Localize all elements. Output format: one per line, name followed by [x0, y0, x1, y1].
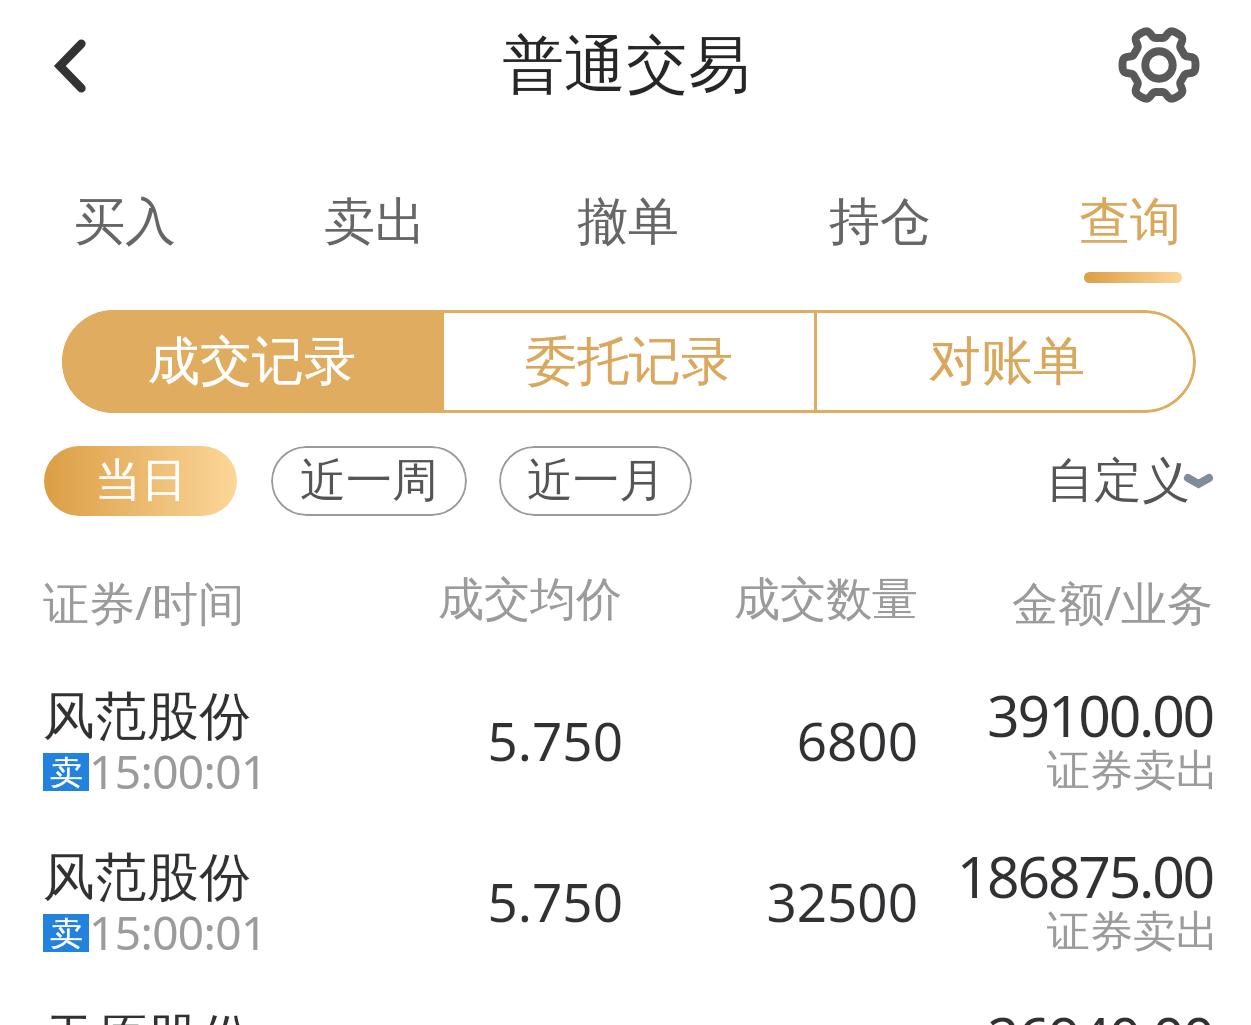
- staticText: 卖: [50, 913, 83, 951]
- staticText: 39100.00: [862, 676, 1213, 754]
- staticText: 近一月: [527, 452, 665, 510]
- staticText: 成交记录: [148, 329, 356, 395]
- button[interactable]: 成交记录: [62, 310, 441, 413]
- button[interactable]: 卖出: [250, 180, 500, 290]
- staticText: 成交数量: [652, 571, 918, 629]
- button[interactable]: 查询: [1005, 180, 1251, 290]
- staticText: 186875.00: [862, 837, 1213, 915]
- staticText: 32500: [653, 865, 918, 937]
- button[interactable]: 近一月: [499, 446, 692, 516]
- staticText: 26940.00: [862, 998, 1213, 1025]
- button[interactable]: 持仓: [755, 180, 1005, 290]
- staticText: 15:00:01: [89, 901, 267, 964]
- button[interactable]: 买入: [0, 180, 250, 290]
- button[interactable]: Settings: [1113, 19, 1205, 111]
- button[interactable]: 当日: [44, 446, 237, 516]
- button[interactable]: 风范股份: [0, 684, 1251, 845]
- staticText: 对账单: [929, 329, 1085, 395]
- staticText: 5.750: [253, 865, 623, 937]
- staticText: 证券卖出: [958, 905, 1219, 959]
- staticText: 自定义: [1046, 451, 1190, 511]
- staticText: 近一周: [300, 452, 438, 510]
- staticText: 买入: [74, 190, 176, 254]
- staticText: 卖出: [324, 190, 426, 254]
- button[interactable]: 近一周: [271, 446, 467, 516]
- button[interactable]: 自定义: [1046, 446, 1223, 516]
- staticText: 5.750: [253, 704, 623, 776]
- staticText: 撤单: [577, 190, 679, 254]
- staticText: 证券卖出: [958, 744, 1219, 798]
- staticText: 天原股份: [43, 1006, 251, 1025]
- staticText: 查询: [1079, 190, 1181, 254]
- staticText: 风范股份: [43, 684, 251, 750]
- staticText: 金额/业务: [952, 571, 1213, 634]
- button[interactable]: 委托记录: [444, 310, 814, 413]
- button[interactable]: 撤单: [503, 180, 753, 290]
- staticText: 风范股份: [43, 845, 251, 911]
- staticText: 卖: [50, 752, 83, 790]
- button[interactable]: 天原股份: [0, 1006, 1251, 1025]
- staticText: 6800: [653, 704, 918, 776]
- staticText: 证券/时间: [43, 571, 245, 634]
- staticText: 持仓: [829, 190, 931, 254]
- staticText: 委托记录: [525, 329, 733, 395]
- button[interactable]: 对账单: [817, 310, 1196, 413]
- staticText: 15:00:01: [89, 740, 267, 803]
- button[interactable]: 风范股份: [0, 845, 1251, 1006]
- staticText: 普通交易: [502, 26, 750, 104]
- staticText: 当日: [95, 452, 187, 510]
- button[interactable]: Back: [40, 30, 112, 102]
- staticText: 成交均价: [252, 571, 622, 629]
